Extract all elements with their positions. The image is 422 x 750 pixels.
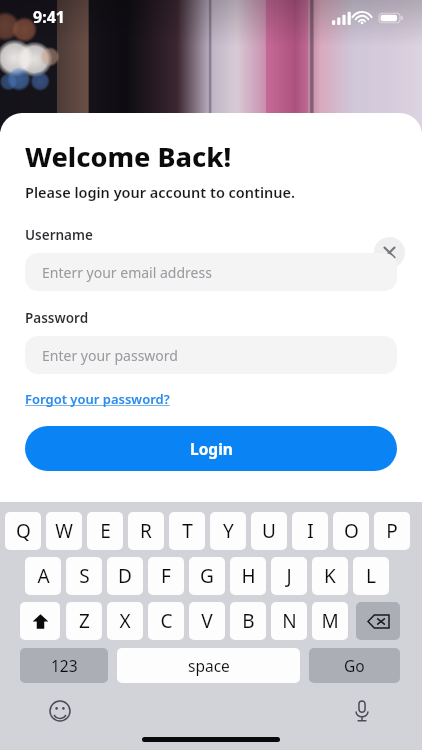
staticText: Username xyxy=(25,226,93,244)
staticText: Y xyxy=(223,518,234,544)
button[interactable]: L xyxy=(353,557,389,595)
staticText: 9:41 xyxy=(33,6,65,28)
button[interactable]: D xyxy=(107,557,143,595)
button[interactable]: Dictation xyxy=(345,694,379,728)
staticText: Welcome Back! xyxy=(25,138,232,175)
staticText: R xyxy=(140,518,152,544)
staticText: Enterr your email address xyxy=(42,263,212,282)
button[interactable]: O xyxy=(333,512,369,550)
staticText: H xyxy=(241,563,256,589)
staticText: C xyxy=(160,608,173,634)
staticText: T xyxy=(182,518,193,544)
staticText: X xyxy=(119,608,131,634)
button[interactable]: Z xyxy=(66,602,102,640)
staticText: U xyxy=(262,518,276,544)
staticText: D xyxy=(118,563,132,589)
staticText: 123 xyxy=(51,655,78,676)
button[interactable]: I xyxy=(292,512,328,550)
staticText: Forgot your password? xyxy=(25,390,170,408)
staticText: W xyxy=(55,518,73,544)
staticText: S xyxy=(79,563,90,589)
button[interactable]: Y xyxy=(210,512,246,550)
button[interactable]: space xyxy=(117,648,300,683)
staticText: G xyxy=(200,563,214,589)
button[interactable]: 123 xyxy=(20,648,108,683)
button[interactable]: Close xyxy=(374,237,405,268)
button[interactable]: Backspace xyxy=(356,602,400,640)
staticText: I xyxy=(307,518,314,544)
button[interactable]: R xyxy=(128,512,164,550)
button[interactable]: Enterr your email address xyxy=(25,253,397,291)
button[interactable]: H xyxy=(230,557,266,595)
staticText: Enter your password xyxy=(42,346,178,365)
button[interactable]: G xyxy=(189,557,225,595)
button[interactable]: A xyxy=(25,557,61,595)
staticText: Login xyxy=(190,438,233,459)
staticText: space xyxy=(188,655,230,676)
button[interactable]: S xyxy=(66,557,102,595)
button[interactable]: V xyxy=(189,602,225,640)
button[interactable]: W xyxy=(46,512,82,550)
button[interactable]: X xyxy=(107,602,143,640)
staticText: E xyxy=(100,518,111,544)
staticText: K xyxy=(324,563,336,589)
button[interactable]: P xyxy=(374,512,410,550)
button[interactable]: J xyxy=(271,557,307,595)
staticText: N xyxy=(282,608,297,634)
staticText: Please login your account to continue. xyxy=(25,182,296,202)
staticText: O xyxy=(344,518,359,544)
staticText: Password xyxy=(25,309,89,327)
staticText: M xyxy=(321,608,339,634)
button[interactable]: C xyxy=(148,602,184,640)
button[interactable]: F xyxy=(148,557,184,595)
staticText: B xyxy=(242,608,255,634)
button[interactable]: Enter your password xyxy=(25,336,397,374)
staticText: Q xyxy=(16,518,31,544)
button[interactable]: Emoji xyxy=(43,694,77,728)
button[interactable]: E xyxy=(87,512,123,550)
button[interactable]: Q xyxy=(5,512,41,550)
button[interactable]: Shift xyxy=(20,602,60,640)
button[interactable]: N xyxy=(271,602,307,640)
button[interactable]: B xyxy=(230,602,266,640)
staticText: A xyxy=(37,563,50,589)
staticText: J xyxy=(286,563,292,589)
staticText: Z xyxy=(79,608,90,634)
staticText: Go xyxy=(344,655,365,676)
button[interactable]: Login xyxy=(25,426,397,471)
staticText: V xyxy=(201,608,213,634)
button[interactable]: K xyxy=(312,557,348,595)
staticText: F xyxy=(161,563,171,589)
staticText: P xyxy=(386,518,398,544)
button[interactable]: T xyxy=(169,512,205,550)
button[interactable]: M xyxy=(312,602,348,640)
button[interactable]: Forgot your password? xyxy=(25,390,170,408)
button[interactable]: U xyxy=(251,512,287,550)
staticText: L xyxy=(366,563,376,589)
button[interactable]: Go xyxy=(309,648,400,683)
